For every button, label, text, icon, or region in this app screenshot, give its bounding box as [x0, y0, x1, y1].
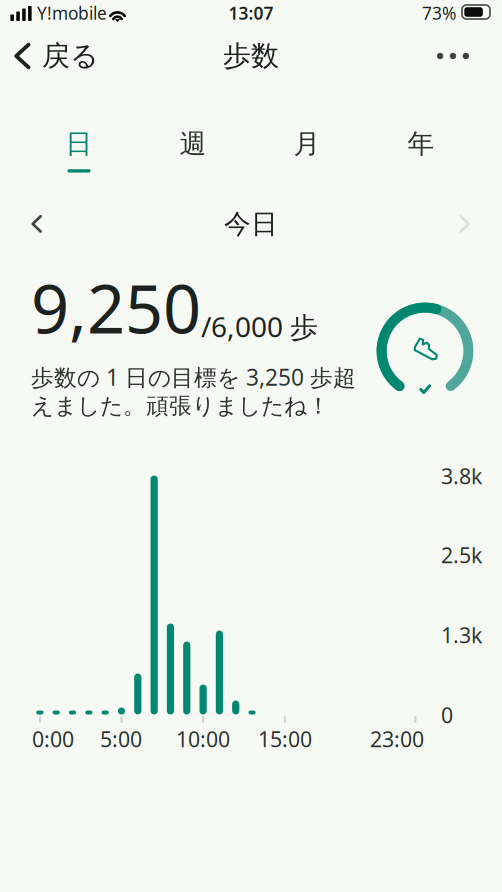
staticText: 5:00: [100, 725, 142, 753]
staticText: 3.8k: [441, 462, 482, 490]
staticText: 歩数の 1 日の目標を 3,250 歩超: [31, 362, 356, 392]
staticText: 10:00: [176, 725, 230, 753]
staticText: 今日: [224, 208, 278, 240]
staticText: 13:07: [228, 1, 273, 24]
button[interactable]: More options: [0, 0, 70, 52]
staticText: 歩数: [223, 39, 279, 73]
staticText: 日: [65, 127, 92, 160]
staticText: 15:00: [258, 725, 312, 753]
button[interactable]: Previous day: [0, 0, 60, 56]
staticText: 23:00: [370, 725, 424, 753]
staticText: 9,250: [31, 263, 201, 352]
staticText: /6,000 歩: [201, 308, 318, 345]
staticText: 月: [293, 127, 320, 160]
button[interactable]: 年: [0, 0, 114, 64]
staticText: 週: [179, 127, 206, 160]
staticText: 2.5k: [441, 541, 482, 569]
staticText: 73%: [422, 1, 456, 24]
button[interactable]: 戻る: [0, 0, 130, 52]
button[interactable]: 日: [0, 0, 114, 64]
button[interactable]: 週: [0, 0, 114, 64]
button[interactable]: 月: [0, 0, 114, 64]
staticText: 1.3k: [441, 621, 482, 649]
button[interactable]: Next day: [0, 0, 60, 56]
staticText: 戻る: [42, 39, 99, 73]
staticText: 年: [407, 127, 434, 160]
staticText: 0: [441, 701, 453, 729]
staticText: Y!mobile: [37, 1, 107, 24]
staticText: えました。頑張りましたね！: [31, 392, 330, 420]
staticText: 0:00: [32, 725, 74, 753]
